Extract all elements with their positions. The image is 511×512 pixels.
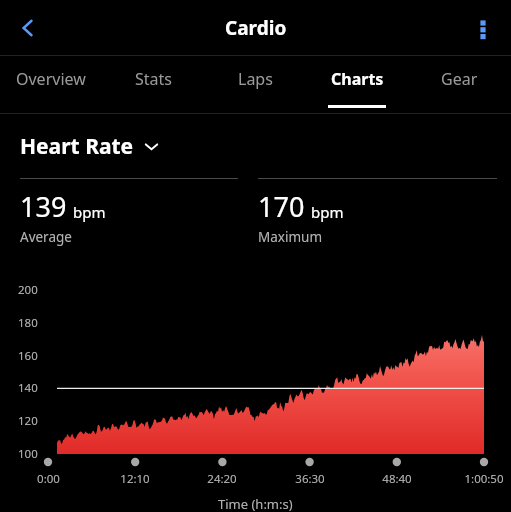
staticText: Average [20, 228, 72, 246]
staticText: 24:20 [207, 471, 237, 487]
staticText: 180 [18, 315, 38, 331]
staticText: 12:10 [120, 471, 150, 487]
staticText: 170 [258, 188, 305, 225]
staticText: bpm [73, 202, 106, 222]
staticText: Maximum [258, 228, 323, 246]
staticText: 139 [20, 188, 67, 225]
button[interactable]: More options [461, 6, 505, 50]
staticText: 200 [18, 282, 38, 298]
staticText: Overview [16, 68, 86, 90]
staticText: 0:00 [37, 471, 60, 487]
button[interactable]: Stats [102, 56, 204, 112]
staticText: 1:00:50 [464, 471, 504, 487]
button[interactable]: Laps [204, 56, 306, 112]
staticText: Laps [238, 68, 273, 90]
staticText: 48:40 [382, 471, 412, 487]
button[interactable]: Charts [306, 56, 408, 112]
staticText: 140 [18, 380, 38, 396]
staticText: 100 [18, 446, 38, 462]
staticText: bpm [311, 202, 344, 222]
button[interactable]: Heart Rate [20, 132, 159, 161]
staticText: 160 [18, 348, 38, 364]
button[interactable]: Gear [408, 56, 510, 112]
staticText: Cardio [225, 15, 287, 41]
staticText: Stats [135, 68, 172, 90]
staticText: Gear [441, 68, 478, 90]
button[interactable]: Overview [0, 56, 102, 112]
staticText: 36:30 [295, 471, 325, 487]
staticText: Time (h:m:s) [218, 495, 293, 512]
staticText: Charts [331, 68, 384, 90]
staticText: 120 [18, 413, 38, 429]
button[interactable]: Back [6, 6, 50, 50]
staticText: Heart Rate [20, 132, 134, 161]
